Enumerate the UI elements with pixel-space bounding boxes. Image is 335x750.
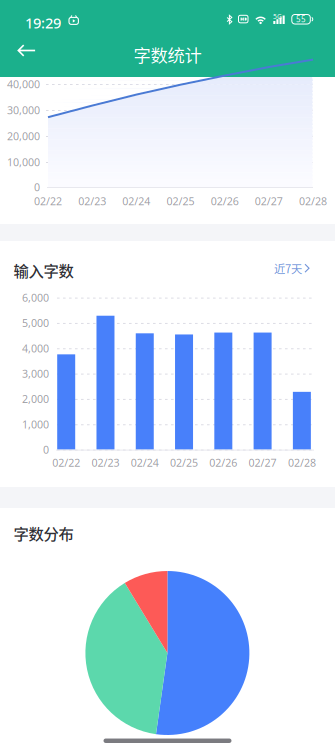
- staticText: 02/27: [255, 194, 283, 208]
- staticText: 30,000: [7, 103, 40, 117]
- staticText: 40,000: [7, 77, 40, 91]
- staticText: 02/23: [91, 455, 119, 470]
- staticText: 3,000: [22, 366, 49, 381]
- staticText: 5,000: [22, 316, 49, 330]
- staticText: 55: [296, 14, 306, 24]
- staticText: 02/22: [34, 194, 62, 208]
- staticText: 1,000: [22, 417, 49, 431]
- staticText: 0: [34, 180, 40, 194]
- staticText: 02/22: [52, 455, 80, 470]
- staticText: 02/28: [299, 194, 327, 208]
- staticText: 字数统计: [133, 42, 201, 67]
- staticText: 02/25: [166, 194, 194, 208]
- button[interactable]: 近7天: [268, 255, 316, 281]
- staticText: 近7天: [274, 260, 302, 276]
- staticText: 02/26: [209, 455, 237, 470]
- staticText: 02/26: [211, 194, 239, 208]
- staticText: 字数分布: [13, 522, 73, 544]
- staticText: 10,000: [7, 155, 40, 169]
- staticText: 02/24: [131, 455, 159, 470]
- staticText: 19:29: [25, 13, 61, 32]
- staticText: 02/28: [288, 455, 316, 470]
- staticText: 02/23: [78, 194, 106, 208]
- staticText: 02/25: [170, 455, 198, 470]
- staticText: 输入字数: [13, 259, 73, 281]
- staticText: 5G: [273, 12, 282, 21]
- staticText: 2,000: [22, 392, 49, 406]
- staticText: 02/27: [249, 455, 277, 470]
- staticText: 02/24: [122, 194, 150, 208]
- staticText: 6,000: [22, 290, 49, 305]
- staticText: 20,000: [7, 129, 40, 143]
- staticText: 4,000: [22, 341, 49, 355]
- staticText: 0: [43, 442, 49, 457]
- button[interactable]: Back: [0, 28, 52, 72]
